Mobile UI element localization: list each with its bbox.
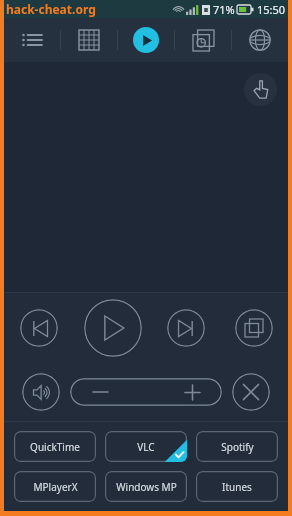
staticText: MPlayerX bbox=[33, 480, 78, 494]
button[interactable]: Volume up bbox=[162, 378, 222, 406]
staticText: Itunes bbox=[222, 480, 252, 494]
button[interactable]: Windows MP bbox=[105, 471, 187, 502]
button[interactable]: Close bbox=[232, 373, 270, 411]
button[interactable]: Touchpad mode bbox=[244, 73, 277, 106]
staticText: QuickTime bbox=[30, 440, 80, 454]
button[interactable]: Play bbox=[84, 299, 142, 357]
staticText: Windows MP bbox=[116, 480, 177, 494]
button[interactable]: Previous bbox=[20, 309, 58, 347]
button[interactable]: Volume down bbox=[70, 378, 130, 406]
button[interactable]: Spotify bbox=[196, 431, 278, 462]
button[interactable]: Itunes bbox=[196, 471, 278, 502]
button[interactable]: VLC bbox=[105, 431, 187, 462]
button[interactable]: Play bbox=[118, 18, 174, 62]
button[interactable]: Switch window bbox=[235, 309, 273, 347]
button[interactable]: Keypad bbox=[61, 18, 117, 62]
button[interactable]: Next bbox=[167, 309, 205, 347]
button[interactable]: Playlist bbox=[4, 18, 60, 62]
staticText: Spotify bbox=[221, 440, 254, 454]
staticText: VLC bbox=[137, 440, 155, 454]
staticText: 15:50 bbox=[257, 2, 286, 17]
staticText: hack-cheat.org bbox=[6, 1, 96, 17]
button[interactable]: Browser bbox=[232, 18, 288, 62]
button[interactable]: MPlayerX bbox=[14, 471, 96, 502]
staticText: 71% bbox=[213, 2, 235, 17]
button[interactable]: QuickTime bbox=[14, 431, 96, 462]
button[interactable]: Mute bbox=[22, 373, 60, 411]
button[interactable]: Presentation bbox=[175, 18, 231, 62]
